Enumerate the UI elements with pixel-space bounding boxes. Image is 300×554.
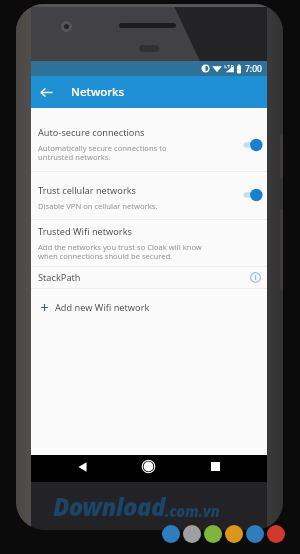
- button[interactable]: Back: [69, 455, 96, 482]
- staticText: Trust cellular networks: [38, 184, 137, 197]
- staticText: Download: [53, 490, 165, 523]
- button[interactable]: Back: [31, 76, 61, 108]
- button[interactable]: Trust cellular networks: [31, 172, 267, 219]
- button[interactable]: StackPath: [31, 267, 267, 288]
- staticText: .com.vn: [165, 501, 220, 521]
- staticText: StackPath: [38, 271, 81, 284]
- staticText: Auto-secure connections: [38, 126, 145, 139]
- button[interactable]: Add new Wifi network: [31, 289, 267, 321]
- staticText: Add new Wifi network: [55, 301, 150, 314]
- button[interactable]: Auto-secure connections: [31, 108, 267, 171]
- button[interactable]: Recent apps: [202, 455, 229, 482]
- staticText: Networks: [71, 84, 125, 100]
- button[interactable]: Toggle switch: [243, 188, 263, 202]
- staticText: 7:00: [245, 63, 262, 75]
- staticText: Add the networks you trust so Cloak will…: [38, 242, 202, 262]
- button[interactable]: Home: [135, 455, 162, 482]
- staticText: Automatically secure connections to untr…: [38, 143, 167, 162]
- button[interactable]: Info: [250, 272, 261, 283]
- staticText: Trusted Wifi networks: [38, 225, 132, 238]
- button[interactable]: Toggle switch: [243, 138, 263, 152]
- staticText: Disable VPN on cellular networks.: [38, 201, 158, 210]
